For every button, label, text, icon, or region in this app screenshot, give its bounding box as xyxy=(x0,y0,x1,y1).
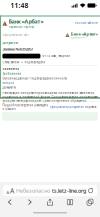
staticText: Регистрация на портале производится на о… xyxy=(2,91,95,95)
staticText: надёжный партнёр xyxy=(8,25,34,29)
staticText: Заявитель xyxy=(2,67,19,71)
staticText: поданного в письменной форме. Срок рассм… xyxy=(2,95,97,99)
staticText: Небезопасно xyxy=(16,187,50,194)
staticText: от 14 мая, вторник xyxy=(42,54,69,58)
staticText: История xyxy=(2,81,14,85)
staticText: Банк «Арбат» xyxy=(8,18,43,25)
staticText: надёжный партнёр xyxy=(71,37,86,39)
button[interactable]: Share xyxy=(40,197,60,208)
staticText: официальные документы xyxy=(50,105,84,109)
staticText: A xyxy=(7,190,10,195)
staticText: 11:48 xyxy=(10,1,28,10)
staticText: Заявка №4392851 xyxy=(2,46,33,52)
staticText: личный кабинет xyxy=(75,21,98,25)
staticText: Банк «Арбат» xyxy=(71,31,98,37)
button[interactable]: Tabs xyxy=(80,197,100,208)
staticText: портала. xyxy=(85,105,97,109)
staticText: Основные данные • Подтверждение личности xyxy=(2,77,67,80)
staticText: Подробные сведения размещены в разделе xyxy=(2,103,48,110)
staticText: ts.letz-line.org xyxy=(52,187,86,194)
staticText: официальный сайт xyxy=(2,33,28,37)
staticText: тридцати календарных дней с даты поступл… xyxy=(2,99,87,103)
button[interactable]: A xyxy=(3,185,97,196)
button[interactable]: Forward xyxy=(20,197,40,208)
staticText: Требования xyxy=(2,72,21,75)
button[interactable]: Back xyxy=(0,197,20,208)
staticText: Документы xyxy=(2,41,18,45)
button[interactable]: Bookmarks xyxy=(60,197,80,208)
staticText: A xyxy=(10,186,14,195)
staticText: Статус заявки — подтверждена xyxy=(2,60,44,64)
staticText: Документы xyxy=(2,86,16,89)
